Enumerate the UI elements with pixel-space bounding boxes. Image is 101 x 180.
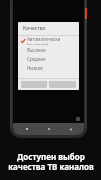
staticText: Доступен выбор качества ТВ каналов bbox=[8, 151, 94, 172]
staticText: Низкое bbox=[27, 65, 43, 71]
staticText: Автоматически (высокое) bbox=[27, 36, 79, 45]
button[interactable]: Автоматически (высокое) bbox=[18, 36, 79, 45]
staticText: Среднее bbox=[27, 56, 46, 62]
staticText: Высокое bbox=[27, 47, 46, 53]
button[interactable]: Высокое bbox=[18, 45, 79, 54]
button[interactable]: Низкое bbox=[18, 63, 79, 72]
staticText: Качество bbox=[23, 25, 46, 32]
button[interactable]: Picture in picture bbox=[76, 117, 80, 121]
button[interactable]: Recents bbox=[20, 123, 34, 135]
button[interactable]: Back bbox=[63, 123, 77, 135]
button[interactable]: Среднее bbox=[18, 54, 79, 63]
button[interactable]: Home bbox=[42, 123, 56, 135]
